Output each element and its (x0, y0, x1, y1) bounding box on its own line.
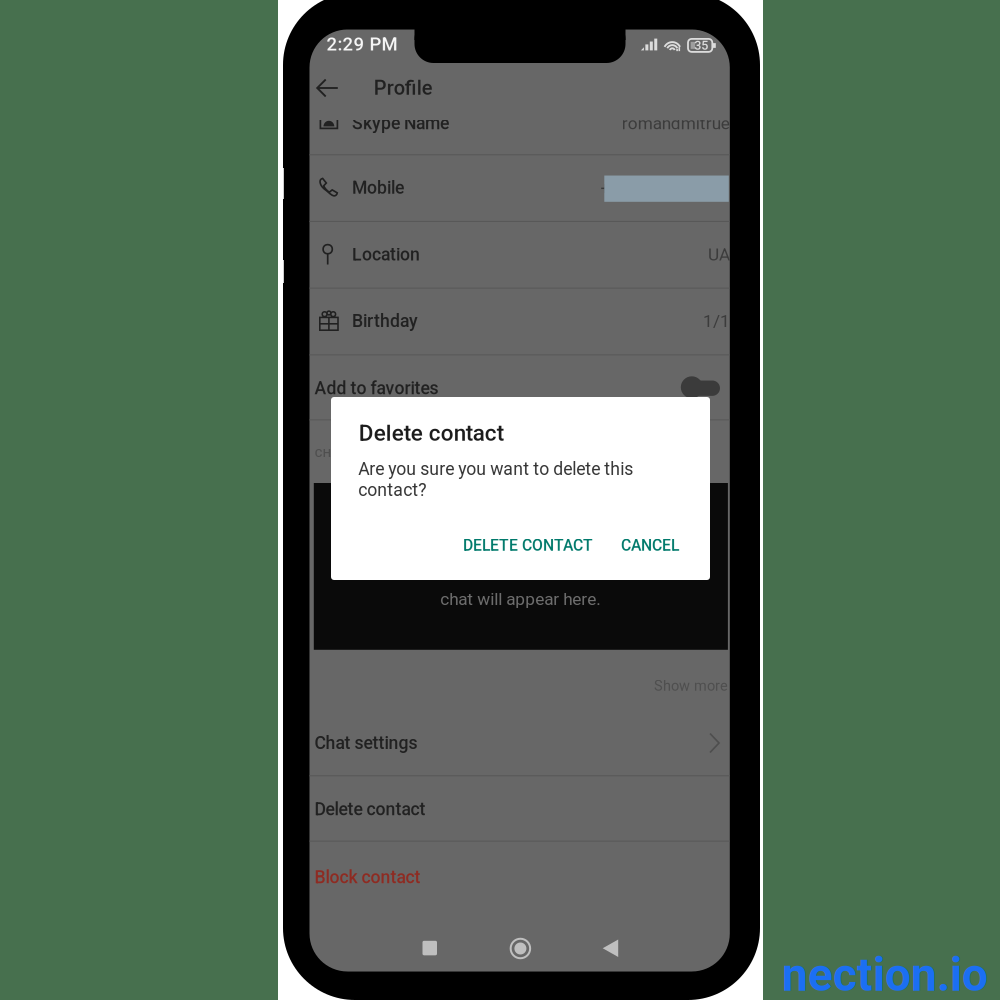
staticText: CANCEL (621, 536, 679, 555)
staticText: Show more (654, 677, 728, 694)
button[interactable]: Home (309, 29, 357, 66)
staticText: chat will appear here. (440, 589, 601, 609)
button[interactable]: Back (309, 29, 357, 66)
staticText: DELETE CONTACT (463, 536, 593, 555)
button[interactable]: CANCEL (331, 397, 399, 435)
button[interactable]: Add to favorites (309, 29, 730, 93)
button[interactable]: Block contact (309, 29, 730, 103)
staticText: Block contact (314, 867, 420, 887)
staticText: nection.io (782, 948, 988, 1000)
button[interactable]: Recent apps (309, 29, 357, 66)
staticText: Birthday (352, 311, 418, 331)
staticText: CHAT (315, 446, 345, 460)
staticText: Add to favorites (314, 378, 438, 399)
staticText: romandmitrue (622, 113, 730, 133)
staticText: Chat settings (314, 733, 417, 753)
staticText: Location (352, 244, 420, 265)
button[interactable]: DELETE CONTACT (331, 397, 471, 435)
staticText: 1/1 (703, 311, 730, 331)
button[interactable]: Delete contact (309, 29, 730, 95)
staticText: Mobile (352, 177, 404, 198)
staticText: contact? (358, 480, 426, 500)
staticText: UA (708, 244, 730, 265)
button[interactable]: Location (309, 29, 730, 96)
button[interactable]: Chat settings (309, 29, 730, 95)
button[interactable]: Birthday (309, 29, 730, 96)
staticText: + (600, 178, 610, 198)
staticText: 35 (694, 38, 708, 53)
staticText: Delete contact (314, 799, 425, 819)
staticText: Profile (374, 76, 433, 100)
staticText: Delete contact (359, 420, 504, 446)
staticText: Are you sure you want to delete this (358, 459, 633, 479)
button[interactable]: Show more (309, 29, 487, 69)
button[interactable]: Back (309, 29, 367, 86)
staticText: 2:29 PM (326, 33, 397, 55)
staticText: Skype Name (352, 113, 449, 134)
button[interactable]: Mobile (309, 29, 730, 96)
